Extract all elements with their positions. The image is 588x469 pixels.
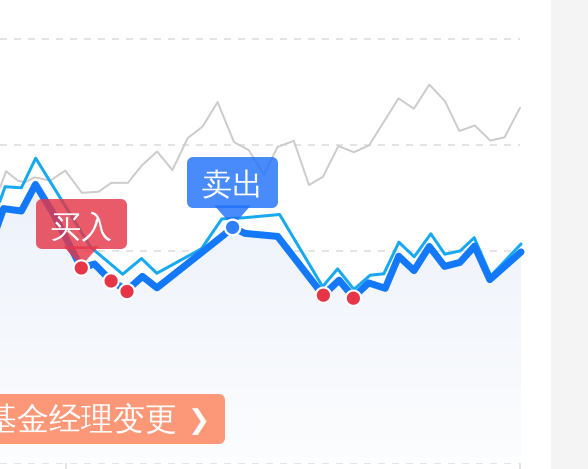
button[interactable]: 基金经理变更 [0, 394, 225, 444]
button[interactable]: 卖出 [187, 157, 278, 208]
staticText: 基金经理变更 [0, 399, 177, 439]
button[interactable]: 买入 [36, 199, 127, 249]
staticText: ❯ [188, 404, 210, 434]
staticText: 卖出 [201, 166, 263, 203]
staticText: 买入 [50, 208, 112, 246]
